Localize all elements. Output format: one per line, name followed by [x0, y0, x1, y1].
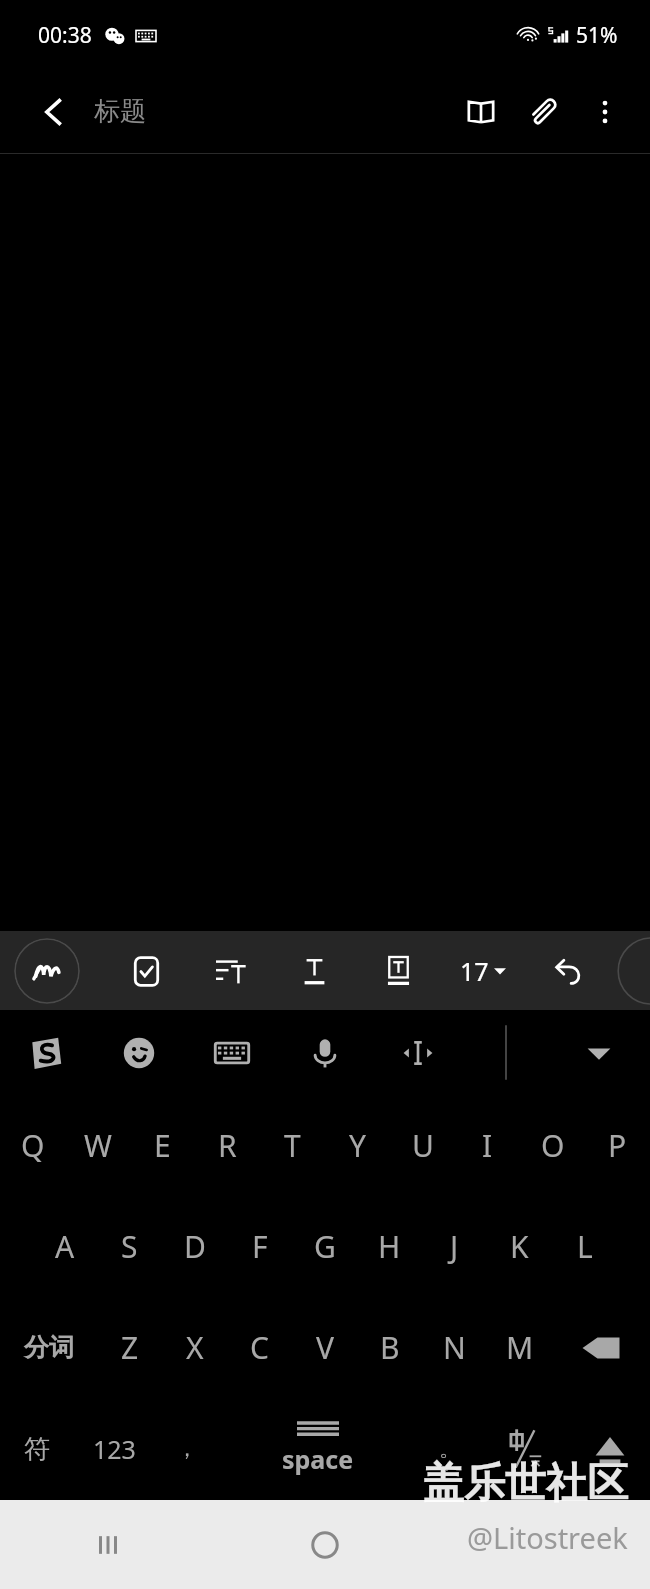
button[interactable]: X: [162, 1297, 227, 1398]
button[interactable]: B: [357, 1297, 422, 1398]
staticText: E: [154, 1125, 171, 1166]
staticText: I: [482, 1125, 493, 1166]
staticText: M: [506, 1327, 534, 1368]
staticText: 51%: [576, 21, 618, 50]
staticText: B: [380, 1327, 400, 1368]
button[interactable]: G: [292, 1196, 357, 1297]
button[interactable]: Chinese English toggle: [481, 1398, 569, 1500]
staticText: C: [250, 1327, 269, 1368]
staticText: 00:38: [38, 21, 92, 50]
button[interactable]: U: [390, 1095, 455, 1196]
staticText: 。: [439, 1435, 461, 1463]
staticText: Y: [349, 1125, 366, 1166]
button[interactable]: E: [130, 1095, 195, 1196]
button[interactable]: W: [65, 1095, 130, 1196]
button[interactable]: Keyboard layout: [185, 1010, 278, 1095]
staticText: G: [314, 1226, 336, 1267]
button[interactable]: S: [97, 1196, 162, 1297]
button[interactable]: H: [357, 1196, 422, 1297]
staticText: L: [577, 1226, 593, 1267]
button[interactable]: Reading mode: [450, 81, 512, 143]
button[interactable]: Y: [325, 1095, 390, 1196]
button[interactable]: R: [195, 1095, 260, 1196]
button[interactable]: O: [520, 1095, 585, 1196]
button[interactable]: Attach: [512, 81, 574, 143]
button[interactable]: ，: [155, 1398, 218, 1500]
button[interactable]: Hide keyboard: [548, 1010, 650, 1095]
staticText: Z: [121, 1327, 139, 1368]
button[interactable]: Space: [218, 1398, 418, 1500]
staticText: H: [378, 1226, 401, 1267]
staticText: 17: [460, 954, 489, 988]
staticText: 盖乐世社区: [423, 1458, 628, 1510]
button[interactable]: J: [422, 1196, 487, 1297]
button[interactable]: Backspace: [552, 1297, 650, 1398]
button[interactable]: 分词: [0, 1297, 97, 1398]
button[interactable]: Recent apps: [0, 1500, 216, 1589]
button[interactable]: A: [32, 1196, 97, 1297]
staticText: @Litostreek: [467, 1518, 628, 1557]
button[interactable]: D: [162, 1196, 227, 1297]
button[interactable]: 。: [418, 1398, 481, 1500]
staticText: Q: [21, 1125, 45, 1166]
staticText: ，: [176, 1435, 198, 1463]
staticText: A: [55, 1226, 75, 1267]
staticText: S: [121, 1226, 138, 1267]
button[interactable]: Handwriting: [14, 938, 80, 1004]
staticText: R: [218, 1125, 237, 1166]
button[interactable]: Undo: [526, 938, 610, 1004]
staticText: 分词: [24, 1332, 74, 1363]
button[interactable]: Q: [0, 1095, 65, 1196]
button[interactable]: F: [227, 1196, 292, 1297]
staticText: P: [608, 1125, 627, 1166]
staticText: F: [252, 1226, 268, 1267]
staticText: J: [450, 1226, 459, 1267]
staticText: V: [316, 1327, 334, 1368]
button[interactable]: T: [260, 1095, 325, 1196]
staticText: space: [282, 1442, 354, 1476]
button[interactable]: More options: [574, 81, 636, 143]
button[interactable]: Sogou input: [0, 1010, 92, 1095]
staticText: 123: [93, 1432, 136, 1466]
button[interactable]: Checklist: [104, 938, 188, 1004]
button[interactable]: Voice input: [278, 1010, 371, 1095]
button[interactable]: Z: [97, 1297, 162, 1398]
staticText: D: [184, 1226, 206, 1267]
button[interactable]: C: [227, 1297, 292, 1398]
button[interactable]: V: [292, 1297, 357, 1398]
staticText: N: [443, 1327, 466, 1368]
button[interactable]: Paragraph style: [188, 938, 272, 1004]
button[interactable]: Move cursor: [371, 1010, 464, 1095]
button[interactable]: P: [585, 1095, 650, 1196]
button[interactable]: M: [487, 1297, 552, 1398]
button[interactable]: 符: [0, 1398, 74, 1500]
button[interactable]: L: [552, 1196, 617, 1297]
button[interactable]: Enter: [569, 1398, 650, 1500]
button[interactable]: 17: [440, 938, 526, 1004]
button[interactable]: Back: [433, 1500, 650, 1589]
button[interactable]: Emoji: [92, 1010, 185, 1095]
staticText: W: [84, 1125, 112, 1166]
staticText: 符: [24, 1433, 50, 1466]
button[interactable]: K: [487, 1196, 552, 1297]
button[interactable]: I: [455, 1095, 520, 1196]
button[interactable]: Underline text: [272, 938, 356, 1004]
staticText: T: [284, 1125, 301, 1166]
button[interactable]: Text box: [356, 938, 440, 1004]
staticText: X: [186, 1327, 204, 1368]
staticText: 标题: [94, 95, 146, 128]
button[interactable]: N: [422, 1297, 487, 1398]
button[interactable]: Home: [216, 1500, 433, 1589]
staticText: U: [412, 1125, 434, 1166]
staticText: K: [510, 1226, 529, 1267]
button[interactable]: Back: [20, 78, 88, 146]
button[interactable]: 123: [74, 1398, 155, 1500]
staticText: O: [541, 1125, 565, 1166]
